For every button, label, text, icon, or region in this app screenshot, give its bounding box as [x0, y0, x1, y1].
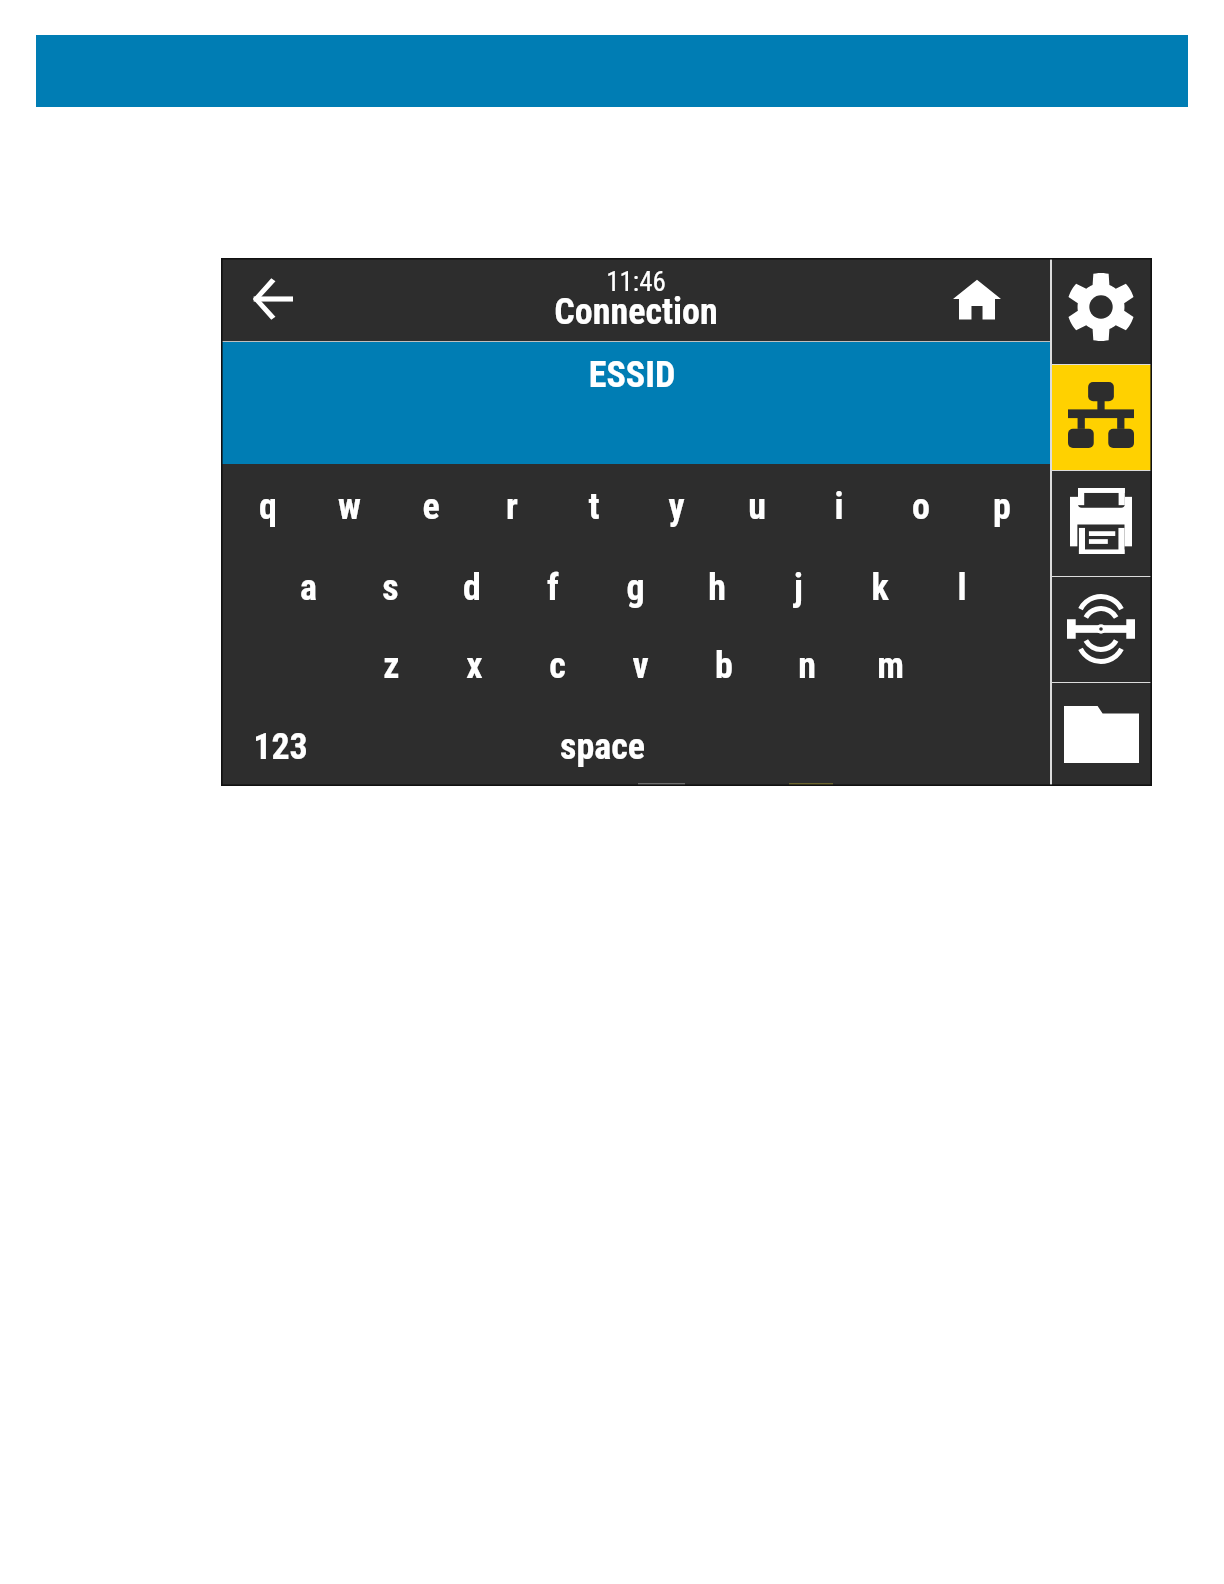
staticText: g: [626, 567, 645, 609]
button[interactable]: w: [308, 461, 390, 540]
button[interactable]: s: [349, 542, 431, 621]
button[interactable]: Network: [1050, 364, 1152, 470]
staticText: x: [466, 645, 483, 687]
button[interactable]: k: [839, 542, 921, 621]
staticText: Connection: [336, 291, 936, 333]
staticText: ESSID: [332, 354, 932, 396]
staticText: y: [668, 486, 685, 528]
button[interactable]: l: [921, 542, 1003, 621]
staticText: v: [632, 645, 649, 687]
button[interactable]: 123: [219, 701, 341, 780]
button[interactable]: x: [433, 620, 516, 699]
staticText: w: [338, 486, 361, 528]
staticText: a: [300, 567, 317, 609]
staticText: b: [715, 645, 733, 687]
button[interactable]: d: [431, 542, 513, 621]
button[interactable]: m: [849, 620, 932, 699]
staticText: p: [993, 486, 1011, 528]
button[interactable]: b: [682, 620, 765, 699]
button[interactable]: Settings: [1050, 258, 1152, 364]
button[interactable]: Home: [953, 279, 1001, 320]
staticText: h: [708, 567, 726, 609]
staticText: l: [957, 567, 967, 609]
button[interactable]: RFID: [1050, 576, 1152, 682]
staticText: 123: [253, 726, 308, 768]
button[interactable]: n: [765, 620, 848, 699]
staticText: i: [834, 486, 844, 528]
button[interactable]: u: [716, 461, 798, 540]
staticText: o: [912, 486, 930, 528]
staticText: space: [560, 726, 645, 768]
staticText: e: [422, 486, 440, 528]
button[interactable]: Print: [1050, 470, 1152, 576]
button[interactable]: i: [798, 461, 880, 540]
button[interactable]: y: [635, 461, 717, 540]
button[interactable]: f: [512, 542, 594, 621]
staticText: u: [748, 486, 766, 528]
button[interactable]: a: [267, 542, 349, 621]
button[interactable]: h: [676, 542, 758, 621]
button[interactable]: c: [516, 620, 599, 699]
staticText: z: [383, 645, 400, 687]
staticText: s: [382, 567, 399, 609]
button[interactable]: z: [350, 620, 433, 699]
staticText: 11:46: [336, 266, 936, 298]
staticText: f: [547, 567, 559, 609]
button[interactable]: g: [594, 542, 676, 621]
staticText: c: [549, 645, 566, 687]
staticText: d: [463, 567, 481, 609]
button[interactable]: [221, 342, 1050, 464]
staticText: k: [871, 567, 889, 609]
button[interactable]: p: [961, 461, 1043, 540]
staticText: t: [588, 486, 600, 528]
button[interactable]: r: [471, 461, 553, 540]
button[interactable]: Back: [252, 277, 293, 321]
staticText: q: [259, 486, 277, 528]
button[interactable]: e: [390, 461, 472, 540]
button[interactable]: q: [227, 461, 309, 540]
button[interactable]: space: [452, 701, 752, 780]
button[interactable]: Storage: [1050, 682, 1152, 786]
staticText: j: [794, 567, 803, 609]
staticText: n: [798, 645, 816, 687]
button[interactable]: j: [757, 542, 839, 621]
button[interactable]: o: [880, 461, 962, 540]
button[interactable]: v: [599, 620, 682, 699]
button[interactable]: t: [553, 461, 635, 540]
staticText: m: [877, 645, 904, 687]
staticText: r: [506, 486, 518, 528]
